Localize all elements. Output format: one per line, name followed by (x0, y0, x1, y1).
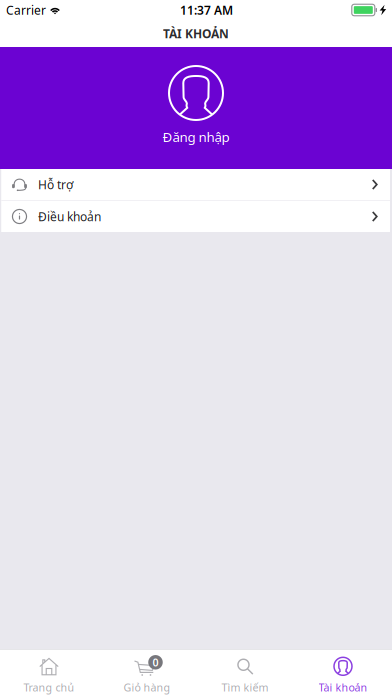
staticText: Trang chủ (23, 680, 74, 694)
staticText: Hỗ trợ (38, 176, 73, 192)
button[interactable]: Hỗ trợ (1, 169, 390, 200)
staticText: Carrier (6, 2, 46, 18)
button[interactable]: Đăng nhập (0, 47, 392, 169)
staticText: Tìm kiếm (221, 680, 268, 694)
staticText: TÀI KHOẢN (163, 25, 229, 41)
button[interactable]: Điều khoản (1, 201, 390, 232)
staticText: Điều khoản (38, 208, 101, 224)
staticText: 11:37 AM (180, 2, 233, 18)
button[interactable]: Trang chủ (0, 650, 98, 696)
button[interactable]: Tìm kiếm (196, 650, 294, 696)
button[interactable]: Tài khoản (294, 650, 392, 696)
staticText: Đăng nhập (162, 128, 229, 146)
staticText: 0 (152, 655, 158, 669)
staticText: Giỏ hàng (123, 680, 170, 694)
staticText: Tài khoản (318, 680, 367, 694)
button[interactable]: 0 (98, 650, 196, 696)
